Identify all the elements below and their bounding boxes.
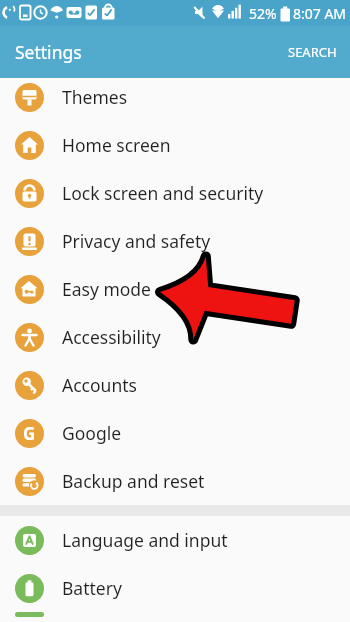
staticText: 8:07 AM <box>293 4 347 23</box>
staticText: Home screen <box>62 133 171 157</box>
staticText: Accounts <box>62 373 137 397</box>
button[interactable]: Battery <box>0 564 350 612</box>
staticText: 52% <box>249 4 277 23</box>
staticText: G <box>23 422 36 445</box>
staticText: Privacy and safety <box>62 229 211 253</box>
button[interactable]: Lock screen and security <box>0 169 350 217</box>
staticText: Lock screen and security <box>62 181 264 205</box>
staticText: Battery <box>62 576 122 600</box>
button[interactable]: Home screen <box>0 121 350 169</box>
button[interactable]: Backup and reset <box>0 457 350 505</box>
button[interactable]: Easy mode <box>0 265 350 313</box>
button[interactable]: Accounts <box>0 361 350 409</box>
staticText: Easy mode <box>62 277 151 301</box>
button[interactable]: Privacy and safety <box>0 217 350 265</box>
staticText: Settings <box>15 40 82 64</box>
button[interactable]: Language and input <box>0 516 350 564</box>
staticText: Themes <box>62 85 128 109</box>
button[interactable] <box>0 612 350 617</box>
button[interactable]: Accessibility <box>0 313 350 361</box>
staticText: Accessibility <box>62 325 161 349</box>
button[interactable]: G <box>0 409 350 457</box>
staticText: SEARCH <box>288 43 337 61</box>
staticText: Language and input <box>62 528 228 552</box>
staticText: Backup and reset <box>62 469 205 493</box>
button[interactable]: SEARCH <box>288 43 337 61</box>
button[interactable]: Themes <box>0 73 350 121</box>
staticText: Google <box>62 421 122 445</box>
